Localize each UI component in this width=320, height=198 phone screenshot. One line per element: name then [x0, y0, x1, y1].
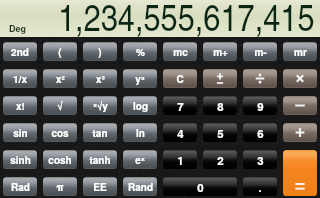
button[interactable]: Rand — [123, 177, 157, 196]
staticText: 9 — [257, 98, 264, 114]
staticText: log — [133, 99, 148, 113]
staticText: 0 — [197, 179, 204, 195]
button[interactable]: Minus — [283, 96, 317, 115]
button[interactable]: . — [243, 177, 277, 196]
staticText: 5 — [217, 125, 224, 141]
staticText: √ — [57, 99, 63, 113]
button[interactable]: sinh — [3, 150, 37, 169]
button[interactable]: tanh — [83, 150, 117, 169]
staticText: sinh — [10, 153, 31, 167]
staticText: 3 — [257, 152, 264, 168]
staticText: sin — [13, 126, 28, 140]
staticText: Rad — [11, 180, 30, 194]
staticText: tan — [92, 126, 108, 140]
staticText: yˣ — [135, 72, 145, 86]
staticText: 1,234,555,617,415 — [58, 0, 315, 41]
button[interactable]: 8 — [203, 96, 237, 115]
staticText: x³ — [96, 72, 105, 86]
button[interactable]: m+ — [203, 42, 237, 61]
staticText: x² — [56, 72, 65, 86]
button[interactable]: x! — [3, 96, 37, 115]
staticText: tanh — [89, 153, 111, 167]
staticText: π — [56, 180, 64, 194]
staticText: 2nd — [11, 45, 29, 59]
button[interactable]: π — [43, 177, 77, 196]
button[interactable]: Divide — [243, 69, 277, 88]
button[interactable]: 2 — [203, 150, 237, 169]
staticText: C — [176, 72, 184, 86]
staticText: 2 — [217, 152, 224, 168]
button[interactable]: 6 — [243, 123, 277, 142]
button[interactable]: 7 — [163, 96, 197, 115]
button[interactable]: EE — [83, 177, 117, 196]
staticText: Deg — [9, 22, 27, 35]
staticText: 4 — [177, 125, 184, 141]
staticText: 7 — [177, 98, 184, 114]
button[interactable]: 1 — [163, 150, 197, 169]
staticText: m- — [254, 45, 267, 59]
staticText: Rand — [128, 180, 153, 194]
button[interactable]: ) — [83, 42, 117, 61]
staticText: EE — [93, 180, 107, 194]
button[interactable]: sin — [3, 123, 37, 142]
button[interactable]: Plus minus — [203, 69, 237, 88]
button[interactable]: Plus — [283, 123, 317, 142]
button[interactable]: ( — [43, 42, 77, 61]
staticText: 1 — [177, 152, 184, 168]
button[interactable]: ln — [123, 123, 157, 142]
button[interactable]: tan — [83, 123, 117, 142]
button[interactable]: 5 — [203, 123, 237, 142]
button[interactable]: √ — [43, 96, 77, 115]
button[interactable]: m- — [243, 42, 277, 61]
staticText: cosh — [48, 153, 72, 167]
button[interactable]: 1/x — [3, 69, 37, 88]
button[interactable]: mc — [163, 42, 197, 61]
staticText: m+ — [213, 45, 228, 59]
button[interactable]: C — [163, 69, 197, 88]
button[interactable]: Multiply — [283, 69, 317, 88]
button[interactable]: ˣ√y — [83, 96, 117, 115]
button[interactable]: 4 — [163, 123, 197, 142]
staticText: cos — [51, 126, 69, 140]
staticText: 8 — [217, 98, 224, 114]
button[interactable]: yˣ — [123, 69, 157, 88]
button[interactable]: 2nd — [3, 42, 37, 61]
button[interactable]: mr — [283, 42, 317, 61]
button[interactable]: Equals — [283, 150, 317, 196]
staticText: . — [258, 179, 262, 195]
staticText: eˣ — [135, 153, 145, 167]
staticText: % — [136, 45, 145, 59]
staticText: mc — [173, 45, 188, 59]
button[interactable]: cosh — [43, 150, 77, 169]
button[interactable]: log — [123, 96, 157, 115]
staticText: mr — [294, 45, 307, 59]
button[interactable]: Rad — [3, 177, 37, 196]
button[interactable]: % — [123, 42, 157, 61]
button[interactable]: cos — [43, 123, 77, 142]
button[interactable]: eˣ — [123, 150, 157, 169]
staticText: x! — [16, 99, 25, 113]
button[interactable]: 0 — [163, 177, 237, 196]
button[interactable]: 9 — [243, 96, 277, 115]
staticText: ( — [58, 45, 62, 59]
staticText: 1/x — [13, 72, 27, 86]
button[interactable]: 3 — [243, 150, 277, 169]
button[interactable]: x³ — [83, 69, 117, 88]
staticText: ) — [98, 45, 102, 59]
staticText: ˣ√y — [93, 99, 108, 113]
staticText: 6 — [257, 125, 264, 141]
staticText: ln — [136, 126, 145, 140]
button[interactable]: x² — [43, 69, 77, 88]
